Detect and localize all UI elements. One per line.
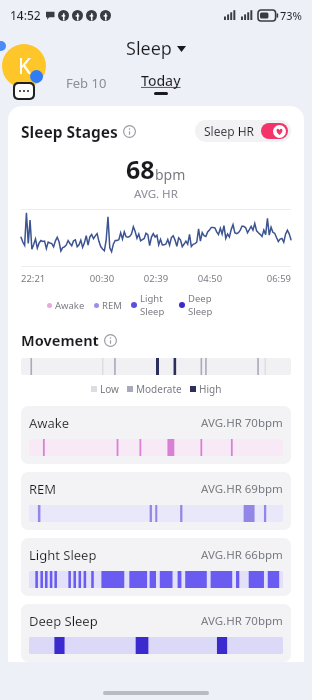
staticText: Deep Sleep [29,612,98,630]
button[interactable]: Sleep [126,36,186,61]
staticText: Feb 10 [66,74,107,92]
staticText: AVG.HR 66bpm [201,547,283,563]
staticText: 04:50 [183,272,237,285]
staticText: Sleep [126,36,172,61]
staticText: Low [100,382,119,396]
staticText: Sleep HR [204,123,255,139]
staticText: AVG.HR 69bpm [201,481,283,497]
staticText: Movement [21,330,99,350]
button[interactable]: Light Sleep [21,538,291,596]
staticText: Sleep Stages [21,121,118,142]
staticText: AVG.HR 70bpm [201,415,283,431]
staticText: 73% [280,8,302,23]
staticText: bpm [155,165,186,184]
staticText: Awake [55,299,85,312]
button[interactable]: Feb 10 [60,70,113,96]
button[interactable]: Information [123,125,136,138]
button[interactable]: Chat bubble avatar [2,44,46,88]
button[interactable]: Sleep HR [195,120,291,142]
button[interactable]: Awake [21,406,291,464]
staticText: 06:59 [237,272,291,285]
button[interactable]: Chat heads menu [15,84,33,98]
staticText: Light [140,292,163,305]
staticText: High [199,382,222,396]
staticText: REM [102,299,122,312]
staticText: Today [141,71,181,90]
staticText: AVG. HR [134,186,178,202]
button[interactable]: Deep Sleep [21,604,291,662]
staticText: 14:52 [10,7,41,23]
staticText: Sleep [188,305,213,318]
staticText: 68 [126,152,155,186]
staticText: 00:30 [75,272,129,285]
staticText: 22:21 [21,272,75,285]
staticText: 02:39 [129,272,183,285]
staticText: Awake [29,414,70,432]
staticText: REM [29,480,57,498]
staticText: K [18,52,31,81]
button[interactable]: Information [104,334,117,347]
staticText: Light Sleep [29,546,97,564]
button[interactable]: Today [135,69,187,97]
staticText: AVG.HR 70bpm [201,613,283,629]
staticText: Deep [188,292,212,305]
button[interactable]: REM [21,472,291,530]
staticText: Moderate [136,382,182,396]
staticText: Sleep [140,305,165,318]
